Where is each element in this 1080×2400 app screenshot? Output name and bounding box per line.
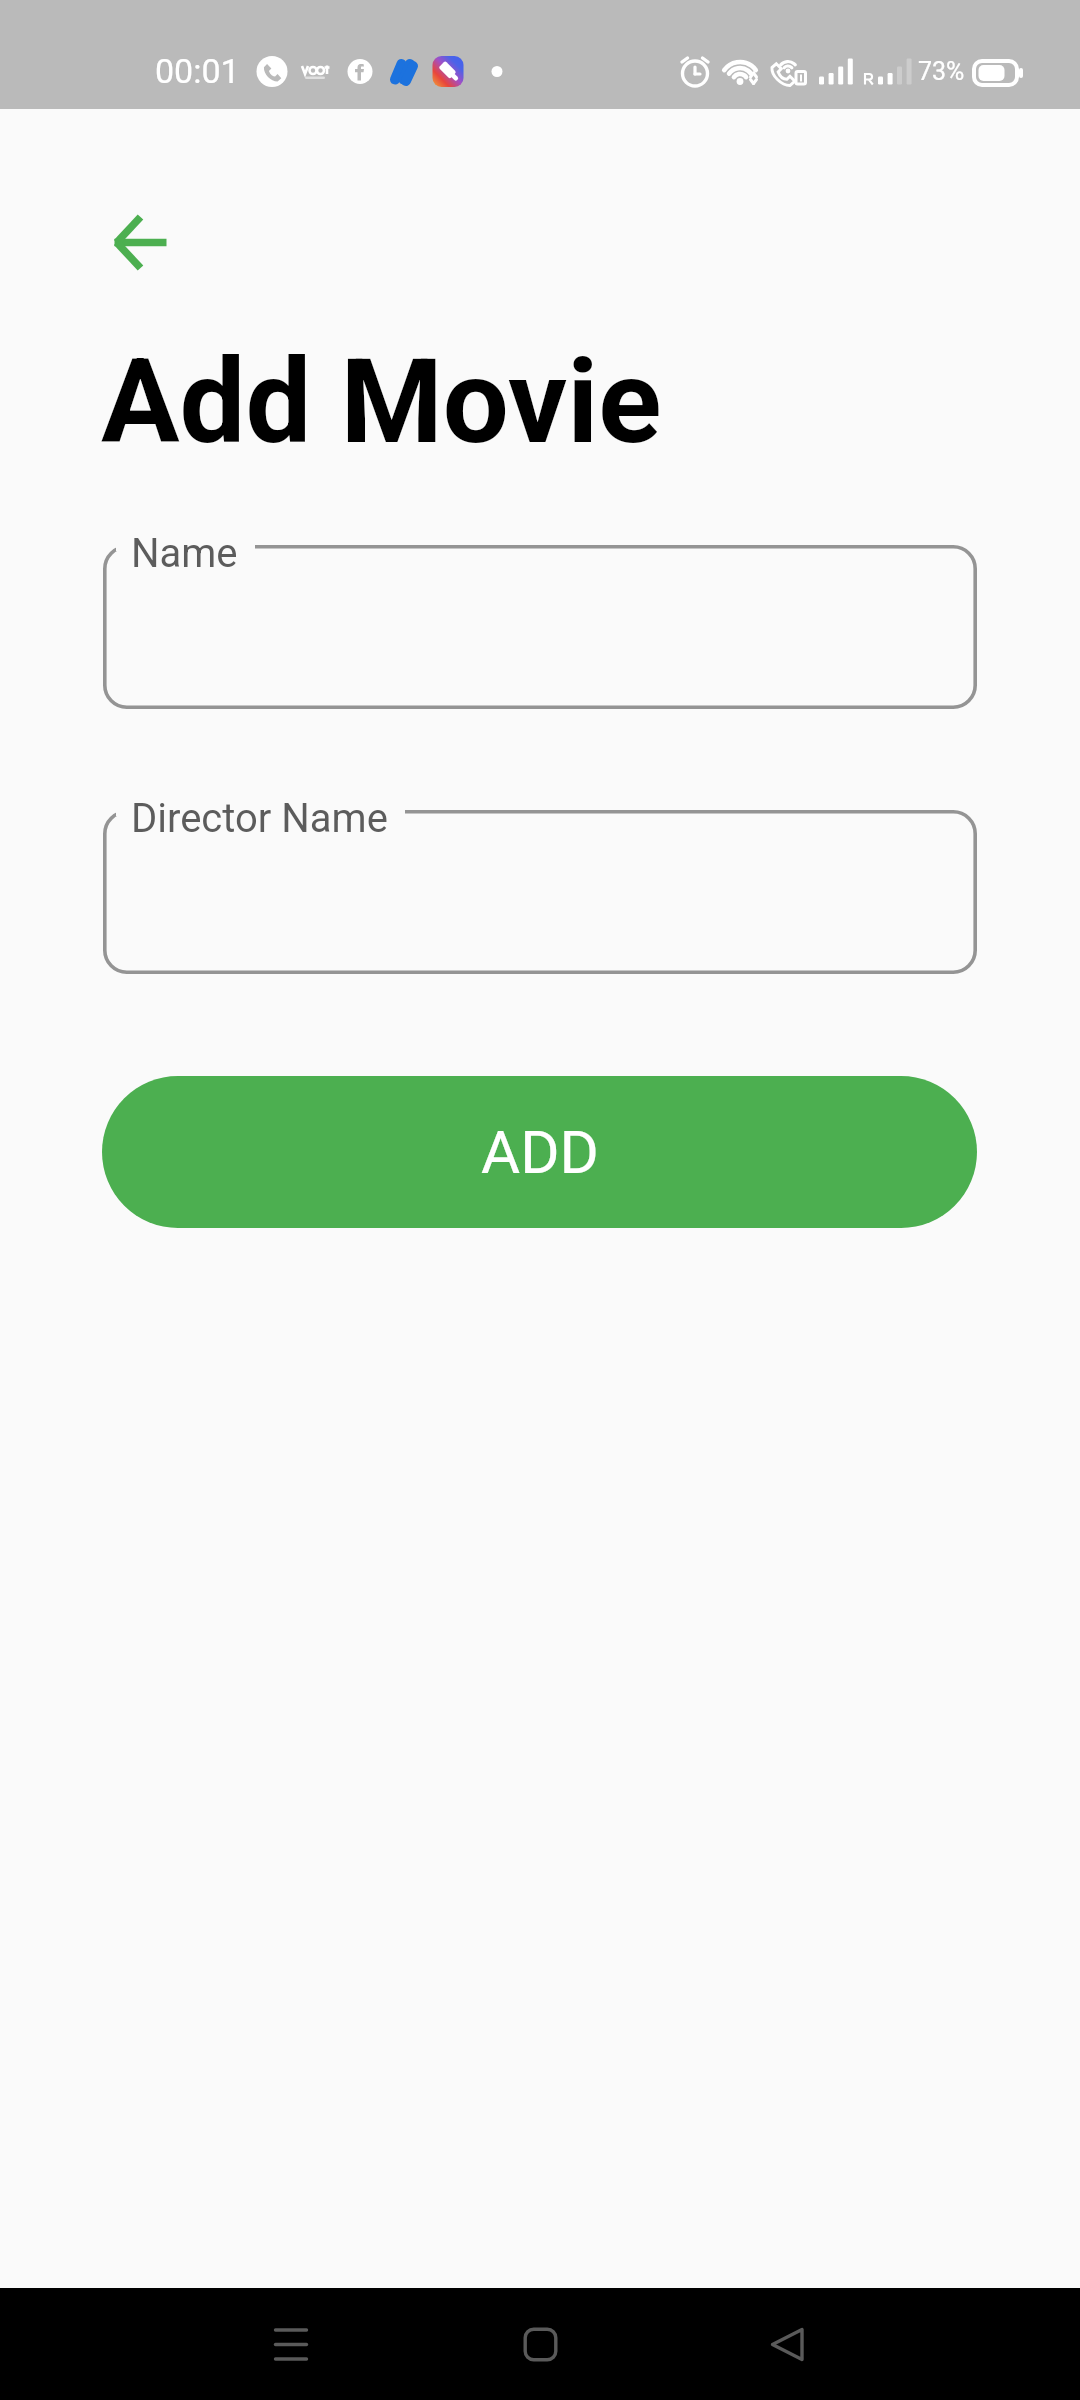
button[interactable]: ADD (102, 1076, 977, 1228)
button[interactable]: Name (103, 545, 977, 709)
staticText: 00:01 (155, 51, 240, 91)
staticText: ADD (481, 1117, 599, 1187)
staticText: Director Name (131, 795, 388, 842)
staticText: Name (131, 530, 238, 577)
button[interactable]: Back (90, 193, 190, 293)
button[interactable]: Home (480, 2288, 600, 2400)
button[interactable]: Back (727, 2288, 847, 2400)
staticText: Add Movie (101, 333, 662, 470)
staticText: 73% (918, 57, 965, 86)
button[interactable]: Recent apps (231, 2288, 351, 2400)
button[interactable]: Director Name (103, 810, 977, 974)
